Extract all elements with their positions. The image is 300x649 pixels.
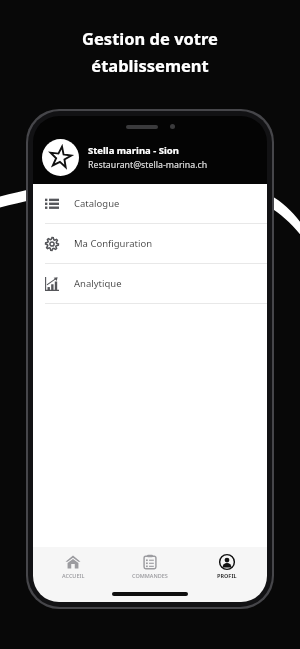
- button[interactable]: PROFIL: [190, 551, 264, 582]
- staticText: Gestion de votre: [82, 27, 218, 49]
- staticText: Ma Configuration: [74, 237, 153, 250]
- staticText: Analytique: [74, 277, 122, 290]
- staticText: établissement: [91, 54, 209, 76]
- staticText: COMMANDES: [132, 572, 168, 579]
- staticText: Restaurant@stella-marina.ch: [88, 159, 208, 171]
- button[interactable]: Ma Configuration: [33, 224, 267, 263]
- button[interactable]: Analytique: [33, 264, 267, 303]
- button[interactable]: Catalogue: [33, 184, 267, 223]
- staticText: Catalogue: [74, 197, 120, 210]
- staticText: Stella marina - Sion: [88, 144, 179, 157]
- button[interactable]: COMMANDES: [113, 551, 187, 582]
- staticText: ACCUEIL: [62, 572, 85, 579]
- staticText: PROFIL: [217, 572, 237, 579]
- button[interactable]: Stella marina - Sion: [42, 139, 258, 176]
- button[interactable]: ACCUEIL: [36, 551, 110, 582]
